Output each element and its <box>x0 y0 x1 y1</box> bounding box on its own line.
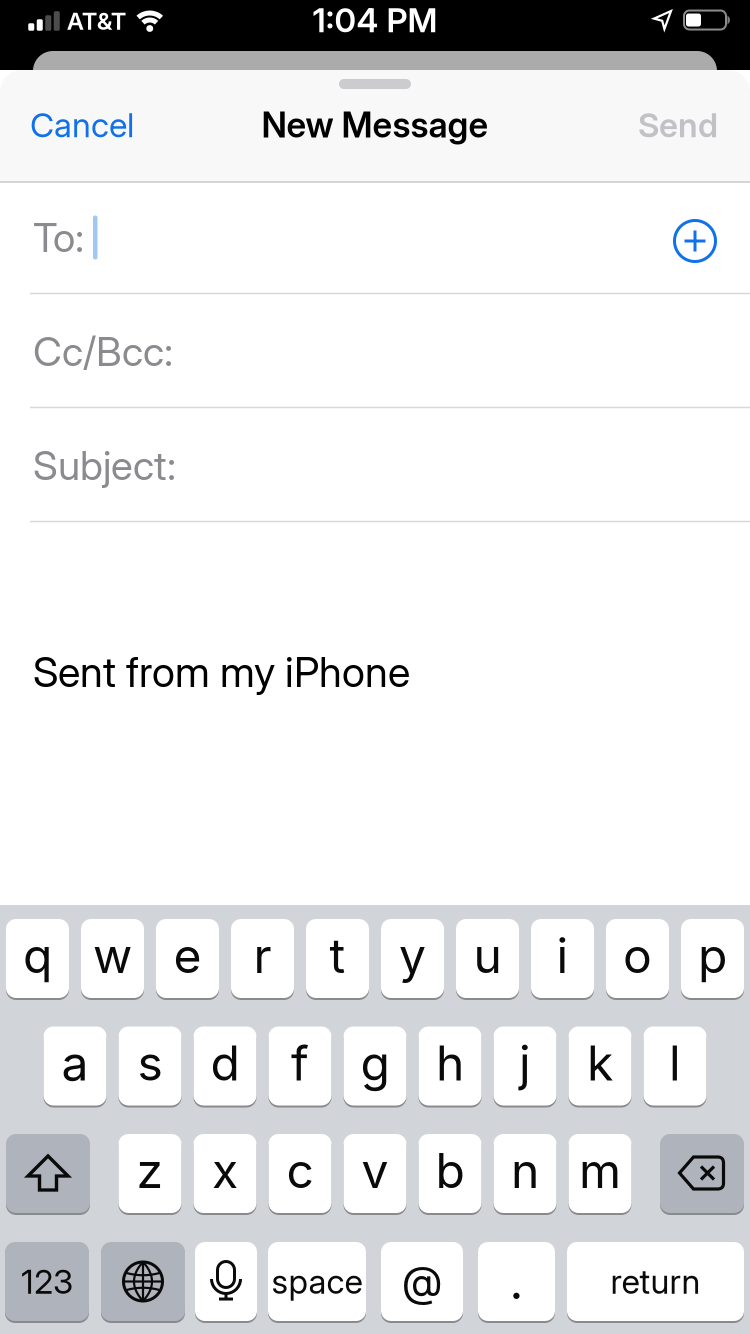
button[interactable]: p <box>681 918 744 999</box>
staticText: y <box>399 927 426 984</box>
staticText: AT&T <box>67 7 127 35</box>
staticText: z <box>136 1142 163 1199</box>
staticText: Sent from my iPhone <box>33 648 410 696</box>
button[interactable]: Send <box>638 105 718 145</box>
button[interactable]: m <box>568 1133 631 1214</box>
staticText: Send <box>638 105 718 145</box>
staticText: a <box>61 1035 88 1091</box>
button[interactable]: q <box>6 918 69 999</box>
staticText: return <box>610 1262 700 1301</box>
staticText: @ <box>401 1256 442 1307</box>
button[interactable]: c <box>268 1133 331 1214</box>
button[interactable]: s <box>118 1025 181 1106</box>
button[interactable]: Message body <box>0 521 750 905</box>
staticText: New Message <box>261 105 488 145</box>
staticText: space <box>271 1262 362 1301</box>
button[interactable]: Shift <box>6 1133 90 1214</box>
staticText: c <box>286 1142 313 1199</box>
staticText: e <box>173 927 201 984</box>
button[interactable]: y <box>381 918 444 999</box>
button[interactable]: Cc/Bcc: <box>0 294 750 408</box>
staticText: k <box>587 1035 613 1091</box>
staticText: Cancel <box>30 105 134 145</box>
staticText: 123 <box>21 1262 73 1301</box>
button[interactable]: Add Contact <box>673 219 717 263</box>
button[interactable]: w <box>81 918 144 999</box>
staticText: j <box>519 1035 531 1091</box>
button[interactable]: x <box>193 1133 256 1214</box>
staticText: x <box>212 1142 238 1199</box>
button[interactable]: return <box>567 1241 744 1322</box>
staticText: w <box>93 927 132 984</box>
button[interactable]: @ <box>381 1241 463 1322</box>
staticText: b <box>435 1142 464 1199</box>
staticText: u <box>473 927 501 984</box>
button[interactable]: To: <box>0 182 750 293</box>
staticText: l <box>669 1035 681 1091</box>
button[interactable]: e <box>156 918 219 999</box>
button[interactable]: Dictate <box>195 1241 257 1322</box>
staticText: s <box>137 1035 162 1091</box>
button[interactable]: f <box>268 1025 331 1106</box>
staticText: g <box>360 1035 389 1091</box>
staticText: m <box>579 1142 621 1199</box>
button[interactable]: Subject: <box>0 408 750 522</box>
staticText: d <box>210 1035 239 1091</box>
staticText: Subject: <box>33 442 176 489</box>
button[interactable]: b <box>418 1133 481 1214</box>
button[interactable]: g <box>343 1025 406 1106</box>
staticText: n <box>511 1142 539 1199</box>
staticText: f <box>291 1035 309 1091</box>
staticText: v <box>361 1142 388 1199</box>
button[interactable]: r <box>231 918 294 999</box>
button[interactable]: v <box>343 1133 406 1214</box>
staticText: h <box>436 1035 464 1091</box>
staticText: . <box>509 1253 523 1310</box>
staticText: q <box>23 927 52 984</box>
staticText: o <box>623 927 652 984</box>
button[interactable]: j <box>493 1025 556 1106</box>
button[interactable]: t <box>306 918 369 999</box>
button[interactable]: l <box>643 1025 706 1106</box>
staticText: i <box>556 927 568 984</box>
button[interactable]: u <box>456 918 519 999</box>
button[interactable]: Delete <box>660 1133 744 1214</box>
button[interactable]: k <box>568 1025 631 1106</box>
button[interactable]: z <box>118 1133 181 1214</box>
button[interactable]: a <box>43 1025 106 1106</box>
button[interactable]: d <box>193 1025 256 1106</box>
staticText: r <box>253 927 271 984</box>
button[interactable]: h <box>418 1025 481 1106</box>
button[interactable]: i <box>531 918 594 999</box>
button[interactable]: o <box>606 918 669 999</box>
button[interactable]: Cancel <box>30 105 134 145</box>
staticText: To: <box>33 214 84 261</box>
button[interactable]: . <box>478 1241 555 1322</box>
button[interactable]: n <box>493 1133 556 1214</box>
staticText: Cc/Bcc: <box>33 328 173 375</box>
button[interactable]: Next Keyboard <box>101 1241 185 1322</box>
button[interactable]: Numbers <box>5 1241 89 1322</box>
staticText: p <box>698 927 727 984</box>
staticText: t <box>329 927 345 984</box>
staticText: 1:04 PM <box>312 0 437 40</box>
button[interactable]: space <box>268 1241 366 1322</box>
